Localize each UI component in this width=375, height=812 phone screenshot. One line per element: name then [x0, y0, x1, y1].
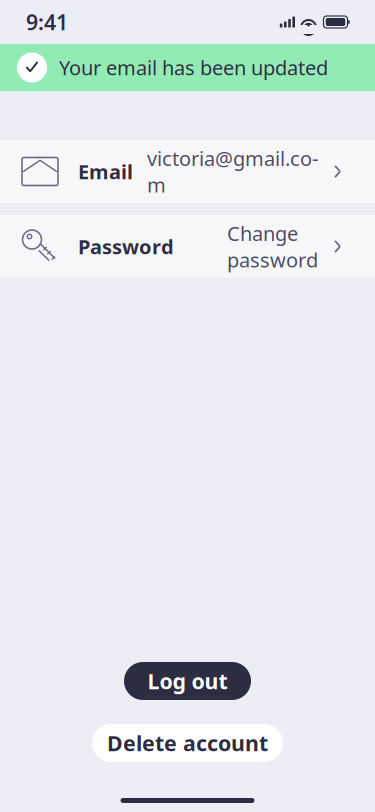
staticText: 9:41: [26, 8, 68, 36]
staticText: Log out: [147, 667, 227, 695]
staticText: Password: [78, 233, 174, 260]
staticText: Email: [78, 158, 133, 185]
staticText: Change password: [227, 220, 318, 273]
button[interactable]: Email: [0, 140, 375, 203]
staticText: victoria@gmail.com: [147, 145, 318, 198]
button[interactable]: Log out: [124, 662, 251, 700]
button[interactable]: Password: [0, 215, 375, 278]
button[interactable]: Delete account: [92, 724, 283, 762]
staticText: Delete account: [107, 729, 268, 757]
staticText: Your email has been updated: [59, 54, 328, 81]
